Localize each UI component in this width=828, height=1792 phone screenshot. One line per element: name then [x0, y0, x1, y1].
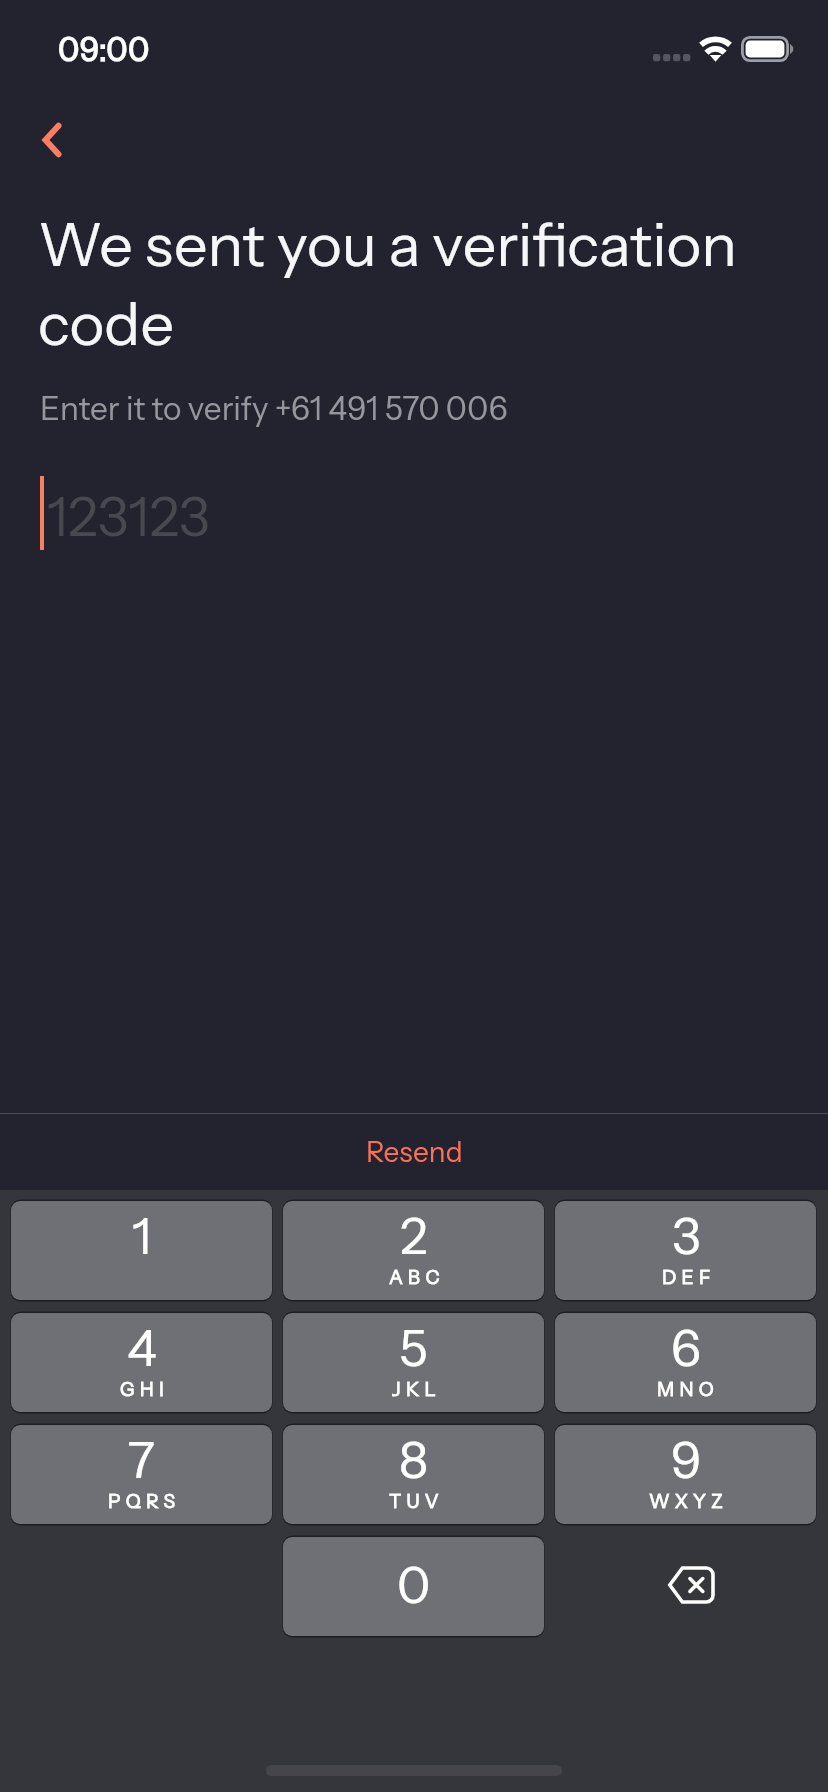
staticText: DEF — [662, 1266, 716, 1289]
button[interactable]: Resend — [324, 1120, 504, 1184]
button[interactable]: 8 — [283, 1425, 544, 1524]
staticText: Resend — [366, 1135, 463, 1169]
staticText: 123123 — [47, 484, 210, 550]
staticText: 5 — [399, 1317, 428, 1378]
button[interactable]: 3 — [555, 1201, 816, 1300]
button[interactable]: 1 — [11, 1201, 272, 1300]
staticText: 7 — [128, 1429, 155, 1490]
button[interactable]: 6 — [555, 1313, 816, 1412]
staticText: 1 — [132, 1205, 152, 1266]
staticText: 6 — [671, 1317, 701, 1378]
staticText: 8 — [399, 1429, 429, 1490]
staticText: 3 — [672, 1205, 701, 1266]
staticText: WXYZ — [649, 1490, 729, 1513]
staticText: 4 — [127, 1317, 157, 1378]
staticText: 9 — [671, 1429, 702, 1490]
staticText: GHI — [120, 1378, 170, 1401]
staticText: JKL — [392, 1378, 441, 1401]
button[interactable]: Backspace — [555, 1537, 816, 1636]
staticText: ABC — [389, 1266, 445, 1289]
staticText: 2 — [400, 1205, 428, 1266]
staticText: PQRS — [108, 1490, 181, 1513]
staticText: Enter it to verify +61 491 570 006 — [40, 389, 508, 427]
staticText: We sent you a verification code — [38, 208, 778, 360]
staticText: 09:00 — [58, 30, 150, 69]
button[interactable]: 9 — [555, 1425, 816, 1524]
button[interactable]: Back — [20, 108, 84, 172]
staticText: 0 — [397, 1554, 431, 1615]
button[interactable]: 0 — [283, 1537, 544, 1636]
staticText: TUV — [389, 1490, 444, 1513]
button[interactable]: 2 — [283, 1201, 544, 1300]
button[interactable]: 5 — [283, 1313, 544, 1412]
button[interactable]: 4 — [11, 1313, 272, 1412]
button[interactable]: 7 — [11, 1425, 272, 1524]
button[interactable]: Verification code input — [40, 466, 740, 560]
staticText: MNO — [657, 1378, 720, 1401]
